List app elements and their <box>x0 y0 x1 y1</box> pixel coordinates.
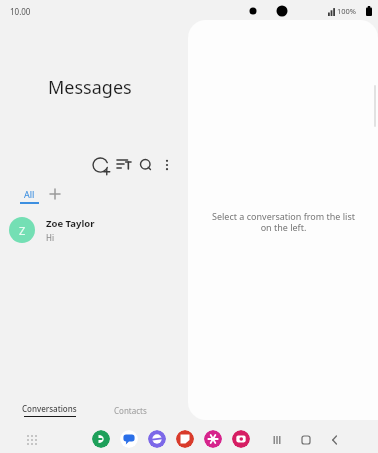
button[interactable]: Back <box>328 433 342 447</box>
button[interactable]: Home <box>299 433 313 447</box>
button[interactable]: Gallery <box>204 430 222 448</box>
button[interactable]: Phone <box>92 430 110 448</box>
button[interactable]: Notes <box>176 430 194 448</box>
button[interactable]: New conversation <box>89 154 113 178</box>
staticText: 10.00 <box>10 6 31 17</box>
button[interactable]: Internet <box>148 430 166 448</box>
staticText: Zoe Taylor <box>46 217 95 230</box>
button[interactable]: Z <box>0 211 188 248</box>
button[interactable]: Messages <box>120 430 138 448</box>
button[interactable]: Search <box>135 154 159 178</box>
button[interactable]: Conversations <box>19 403 80 417</box>
button[interactable]: Add category <box>47 186 63 202</box>
staticText: Select a conversation from the list on t… <box>212 210 355 234</box>
button[interactable]: More options <box>156 154 178 176</box>
staticText: Hi <box>46 232 54 243</box>
staticText: Contacts <box>114 405 147 416</box>
staticText: 100% <box>337 6 357 16</box>
button[interactable]: Camera <box>232 430 250 448</box>
staticText: Conversations <box>22 403 77 414</box>
button[interactable]: Recents <box>270 433 284 447</box>
button[interactable]: Contacts <box>108 403 153 418</box>
button[interactable]: Sort <box>112 154 136 178</box>
staticText: Z <box>19 223 26 238</box>
button[interactable]: All <box>16 188 43 204</box>
staticText: All <box>24 188 35 200</box>
staticText: Messages <box>48 75 132 100</box>
button[interactable]: Apps <box>26 434 38 446</box>
